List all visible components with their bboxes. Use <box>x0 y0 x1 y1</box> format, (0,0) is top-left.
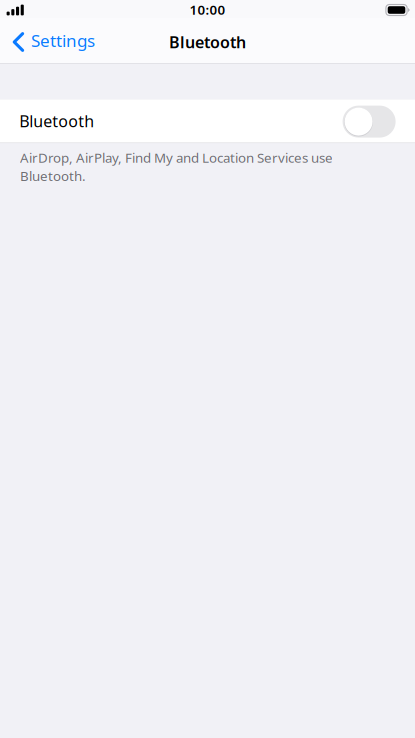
button[interactable]: Bluetooth <box>0 99 415 142</box>
staticText: Bluetooth <box>19 110 94 132</box>
staticText: Settings <box>31 29 95 52</box>
staticText: AirDrop, AirPlay, Find My and Location S… <box>20 149 333 185</box>
staticText: Bluetooth <box>169 31 246 53</box>
button[interactable]: Settings <box>0 18 105 63</box>
staticText: 10:00 <box>189 0 225 19</box>
